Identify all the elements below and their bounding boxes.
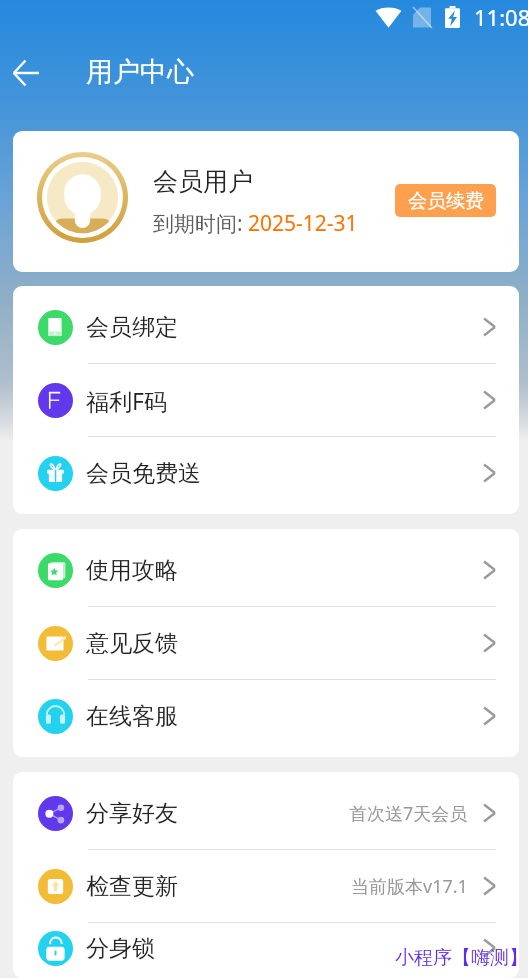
staticText: 分享好友 [86,799,178,828]
staticText: 意见反馈 [86,629,178,658]
staticText: 当前版本v17.1 [351,874,468,899]
button[interactable]: 会员绑定 [13,291,519,363]
staticText: 会员用户 [153,166,253,197]
staticText: 福利F码 [86,385,167,416]
button[interactable]: 检查更新 [13,850,519,922]
button[interactable]: 会员续费 [395,184,496,217]
staticText: 分身锁 [86,934,155,963]
staticText: 使用攻略 [86,556,178,585]
button[interactable]: 分身锁 [13,923,519,973]
staticText: 会员免费送 [86,459,201,488]
button[interactable]: Back [5,52,46,93]
button[interactable]: 会员免费送 [13,437,519,509]
staticText: 用户中心 [86,55,194,89]
staticText: 在线客服 [86,702,178,731]
button[interactable]: 使用攻略 [13,534,519,606]
button[interactable]: 会员用户 [13,131,519,272]
staticText: 检查更新 [86,872,178,901]
staticText: 首次送7天会员 [349,801,468,826]
staticText: 2025-12-31 [248,209,358,238]
button[interactable]: 在线客服 [13,680,519,752]
button[interactable]: 意见反馈 [13,607,519,679]
button[interactable]: 福利F码 [13,364,519,436]
staticText: 到期时间: [153,209,243,238]
staticText: 11:08 [474,2,528,32]
staticText: 会员绑定 [86,313,178,342]
staticText: 会员续费 [408,189,484,213]
button[interactable]: 分享好友 [13,777,519,849]
staticText: 小程序【嗨测】 [395,946,528,970]
